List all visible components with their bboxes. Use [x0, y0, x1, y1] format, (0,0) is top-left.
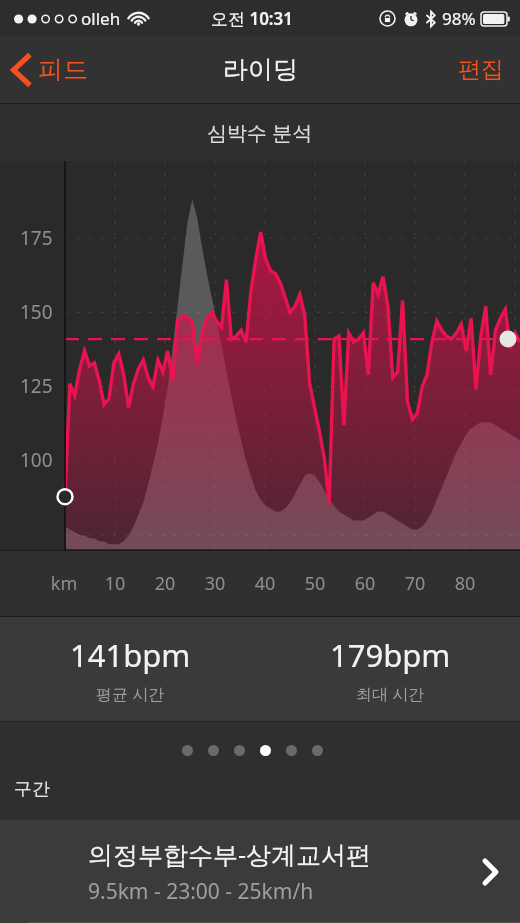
other: Open segment detail: [483, 859, 498, 885]
staticText: 의정부합수부-상계교서편: [88, 837, 372, 871]
staticText: 30: [199, 571, 231, 596]
button[interactable]: 편집: [442, 45, 520, 94]
staticText: 최대 시간: [356, 683, 425, 705]
staticText: 70: [399, 571, 431, 596]
staticText: 평균 시간: [96, 683, 165, 705]
button[interactable]: 피드: [0, 46, 102, 93]
staticText: 80: [449, 571, 481, 596]
staticText: 175: [20, 225, 53, 251]
staticText: 50: [299, 571, 331, 596]
button[interactable]: 179bpm: [260, 617, 520, 721]
staticText: 9.5km - 23:00 - 25km/h: [88, 877, 314, 906]
staticText: 141bpm: [70, 634, 191, 676]
staticText: olleh: [81, 7, 121, 30]
staticText: 150: [20, 299, 53, 325]
staticText: 편집: [458, 55, 504, 84]
staticText: 98%: [442, 7, 476, 30]
staticText: 10: [99, 571, 131, 596]
button[interactable]: 141bpm: [0, 617, 260, 721]
button[interactable]: 의정부합수부-상계교서편: [0, 820, 520, 923]
staticText: 179bpm: [330, 634, 451, 676]
staticText: 라이딩: [223, 54, 298, 85]
staticText: 심박수 분석: [207, 119, 313, 146]
staticText: 40: [249, 571, 281, 596]
staticText: 125: [20, 373, 53, 399]
staticText: 20: [149, 571, 181, 596]
staticText: 오전 10:31: [211, 7, 294, 30]
staticText: 60: [349, 571, 381, 596]
staticText: 피드: [38, 54, 88, 85]
staticText: km: [48, 571, 80, 596]
staticText: 구간: [14, 778, 50, 801]
staticText: 100: [20, 447, 53, 473]
